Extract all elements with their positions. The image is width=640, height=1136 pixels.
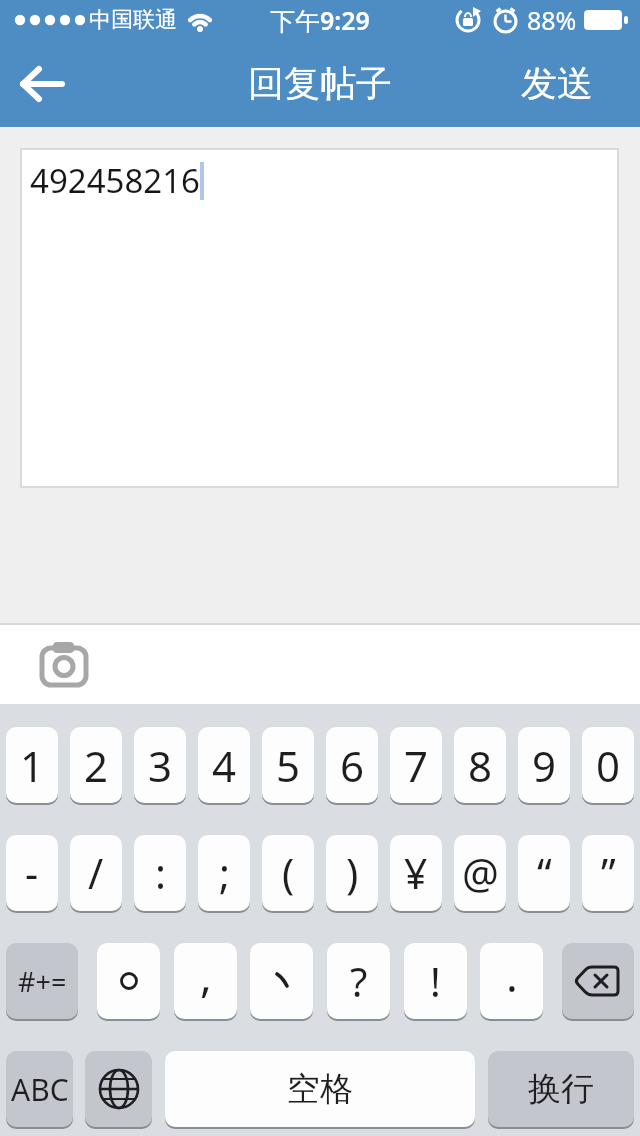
staticText: 回复帖子 xyxy=(248,61,392,106)
button[interactable]: 发送 xyxy=(521,61,593,106)
button[interactable]: 6 xyxy=(326,727,378,803)
button[interactable]: 空格 xyxy=(165,1051,475,1127)
button[interactable]: 9 xyxy=(518,727,570,803)
staticText: 下午9:29 xyxy=(270,3,370,37)
button[interactable]: 4 xyxy=(198,727,250,803)
staticText: 8 xyxy=(468,737,493,794)
button[interactable]: 5 xyxy=(262,727,314,803)
button[interactable] xyxy=(250,943,313,1019)
button[interactable] xyxy=(85,1051,152,1127)
button[interactable] xyxy=(97,943,160,1019)
button[interactable] xyxy=(562,943,634,1019)
button[interactable]: ; xyxy=(198,835,250,911)
button[interactable]: : xyxy=(134,835,186,911)
staticText: 88% xyxy=(527,3,577,37)
staticText: 4 xyxy=(212,737,237,794)
staticText: 7 xyxy=(404,737,429,794)
staticText: 发送 xyxy=(521,61,593,106)
staticText: 492458216 xyxy=(30,158,200,203)
button[interactable]: ! xyxy=(404,943,467,1019)
button[interactable]: - xyxy=(6,835,58,911)
staticText: ( xyxy=(282,845,295,901)
button[interactable]: ¥ xyxy=(390,835,442,911)
button[interactable]: 492458216 xyxy=(20,148,619,488)
staticText: ? xyxy=(350,954,368,1008)
staticText: ” xyxy=(601,845,616,901)
button[interactable]: ” xyxy=(582,835,634,911)
staticText: / xyxy=(88,845,104,901)
staticText: 换行 xyxy=(528,1068,594,1110)
staticText: 9 xyxy=(532,737,557,794)
button[interactable] xyxy=(16,62,68,106)
button[interactable]: . xyxy=(480,943,543,1019)
staticText: 中国联通 xyxy=(89,6,177,34)
staticText: ) xyxy=(346,845,359,901)
staticText: 3 xyxy=(148,737,173,794)
staticText: #+= xyxy=(18,963,67,1000)
staticText: @ xyxy=(462,845,499,901)
button[interactable]: ? xyxy=(327,943,390,1019)
button[interactable]: , xyxy=(174,943,237,1019)
button[interactable]: 0 xyxy=(582,727,634,803)
staticText: “ xyxy=(537,845,552,901)
button[interactable]: / xyxy=(70,835,122,911)
button[interactable] xyxy=(36,637,94,691)
button[interactable]: 换行 xyxy=(488,1051,634,1127)
staticText: ¥ xyxy=(404,845,428,901)
staticText: 2 xyxy=(84,737,109,794)
button[interactable]: 1 xyxy=(6,727,58,803)
button[interactable]: “ xyxy=(518,835,570,911)
staticText: 6 xyxy=(340,737,365,794)
staticText: 0 xyxy=(596,737,621,794)
button[interactable]: 2 xyxy=(70,727,122,803)
button[interactable]: ABC xyxy=(6,1051,73,1127)
button[interactable]: @ xyxy=(454,835,506,911)
staticText: ! xyxy=(430,954,441,1008)
button[interactable]: 7 xyxy=(390,727,442,803)
staticText: : xyxy=(155,845,166,901)
button[interactable]: 3 xyxy=(134,727,186,803)
staticText: 空格 xyxy=(287,1068,353,1110)
staticText: ; xyxy=(219,845,230,901)
button[interactable]: ) xyxy=(326,835,378,911)
button[interactable]: #+= xyxy=(6,943,78,1019)
staticText: 1 xyxy=(20,737,45,794)
button[interactable]: ( xyxy=(262,835,314,911)
button[interactable]: 8 xyxy=(454,727,506,803)
staticText: , xyxy=(200,945,212,1005)
staticText: ABC xyxy=(11,1069,69,1110)
staticText: 5 xyxy=(276,737,301,794)
staticText: - xyxy=(25,845,39,901)
staticText: . xyxy=(506,945,518,1005)
